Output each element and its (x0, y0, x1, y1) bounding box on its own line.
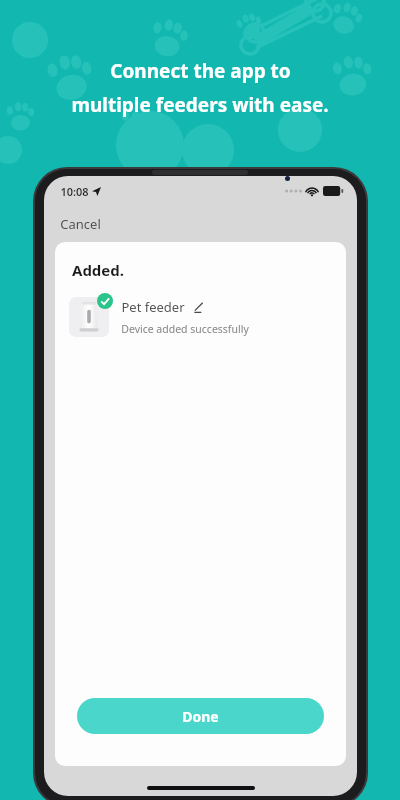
staticText: Cancel (60, 215, 101, 233)
staticText: Connect the app to (110, 58, 291, 84)
button[interactable]: Rename device (192, 301, 205, 314)
staticText: Added. (72, 260, 124, 280)
button[interactable]: Cancel (44, 206, 357, 242)
staticText: 10:08 (60, 184, 89, 199)
button[interactable]: Pet feeder (69, 293, 332, 337)
staticText: Pet feeder (121, 298, 185, 316)
button[interactable]: Done (77, 698, 324, 734)
staticText: Device added successfully (121, 322, 249, 336)
staticText: Done (182, 707, 219, 726)
staticText: multiple feeders with ease. (71, 92, 329, 118)
